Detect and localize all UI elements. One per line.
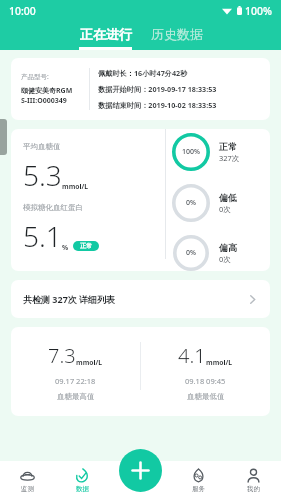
staticText: 正常 (80, 242, 92, 250)
staticText: 历史数据 (151, 26, 203, 42)
staticText: 100% (182, 147, 200, 157)
staticText: 血糖最低值 (187, 392, 225, 401)
staticText: 4.1 (178, 342, 206, 369)
staticText: 10:00 (9, 4, 36, 18)
staticText: 数据结束时间：2019-10-02 18:33:53 (98, 100, 217, 110)
staticText: 我的 (247, 485, 260, 493)
staticText: mmol/L (206, 358, 233, 367)
staticText: 血糖最高值 (57, 392, 95, 401)
staticText: mmol/L (76, 358, 103, 367)
staticText: 09.17 22:18 (55, 376, 96, 386)
button[interactable]: 产品型号: (11, 58, 270, 120)
staticText: 正在进行 (80, 26, 132, 42)
button[interactable]: 监测 (0, 466, 55, 495)
staticText: 偏低 (219, 192, 237, 203)
staticText: 服务 (192, 485, 205, 493)
button[interactable]: 服务 (171, 466, 226, 495)
staticText: 产品型号: (21, 72, 49, 81)
staticText: mmol/L (62, 182, 89, 191)
staticText: S-III:O000349 (21, 96, 67, 106)
staticText: 0次 (219, 204, 231, 214)
button[interactable]: 共检测 327次 详细列表 (11, 280, 270, 318)
button[interactable]: 添加 (119, 449, 162, 492)
other: 查看详细列表 (247, 294, 258, 305)
button[interactable]: 7.3 (11, 327, 270, 416)
staticText: 正常 (219, 141, 237, 152)
staticText: 偏高 (219, 242, 237, 253)
staticText: 5.3 (23, 156, 62, 194)
staticText: 0% (186, 198, 196, 208)
button[interactable]: 正在进行 (75, 26, 136, 50)
button[interactable]: 数据 (55, 466, 110, 495)
staticText: 0次 (219, 254, 231, 264)
staticText: 327次 (219, 153, 240, 163)
button[interactable]: 我的 (226, 466, 281, 495)
staticText: 平均血糖值 (23, 142, 61, 151)
staticText: 数据开始时间：2019-09-17 18:33:53 (98, 84, 217, 94)
staticText: 100% (245, 4, 272, 18)
staticText: 7.3 (48, 342, 76, 369)
staticText: 模拟糖化血红蛋白 (23, 203, 83, 212)
staticText: % (62, 243, 69, 252)
staticText: 09.18 09:45 (185, 376, 226, 386)
staticText: 5.1 (23, 217, 62, 255)
staticText: 监测 (21, 485, 34, 493)
staticText: 数据 (76, 485, 89, 493)
staticText: 0% (186, 248, 196, 258)
button[interactable]: 历史数据 (146, 26, 207, 50)
staticText: 颐健安美奇RGM (21, 86, 73, 96)
button[interactable]: 平均血糖值 (11, 129, 270, 271)
staticText: 佩戴时长：16小时47分42秒 (98, 68, 188, 78)
staticText: 共检测 327次 详细列表 (23, 293, 116, 305)
